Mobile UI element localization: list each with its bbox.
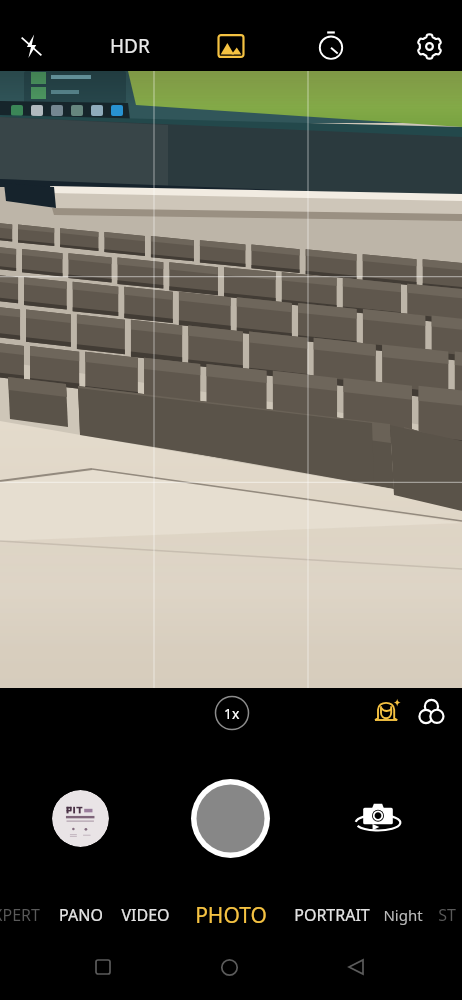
- button[interactable]: ST: [430, 885, 462, 945]
- staticText: PANO: [59, 904, 103, 926]
- button[interactable]: Home: [207, 945, 251, 989]
- staticText: 1x: [224, 704, 240, 723]
- button[interactable]: VIDEO: [117, 885, 173, 945]
- button[interactable]: XPERT: [0, 885, 42, 945]
- button[interactable]: HDR: [96, 21, 164, 71]
- staticText: VIDEO: [121, 904, 170, 926]
- staticText: PORTRAIT: [294, 904, 370, 926]
- button[interactable]: Beauty mode: [365, 689, 409, 733]
- staticText: ST: [438, 904, 456, 926]
- staticText: PHOTO: [195, 901, 267, 930]
- button[interactable]: Switch camera: [352, 792, 404, 844]
- button[interactable]: Gallery: [52, 790, 109, 847]
- button[interactable]: Night: [380, 885, 426, 945]
- staticText: Night: [383, 905, 423, 925]
- button[interactable]: PANO: [56, 885, 106, 945]
- button[interactable]: Flash off: [3, 21, 59, 71]
- button[interactable]: PORTRAIT: [290, 885, 374, 945]
- button[interactable]: Settings: [401, 21, 458, 71]
- button[interactable]: Back: [334, 945, 378, 989]
- button[interactable]: PHOTO: [192, 885, 270, 945]
- button[interactable]: Timer: [302, 21, 359, 71]
- button[interactable]: Take photo: [191, 779, 270, 858]
- staticText: HDR: [110, 33, 150, 59]
- button[interactable]: Filters: [410, 690, 454, 734]
- button[interactable]: 1x: [214, 695, 250, 731]
- button[interactable]: Recent apps: [81, 945, 125, 989]
- staticText: XPERT: [0, 904, 40, 926]
- button[interactable]: Scene mode: [202, 21, 259, 71]
